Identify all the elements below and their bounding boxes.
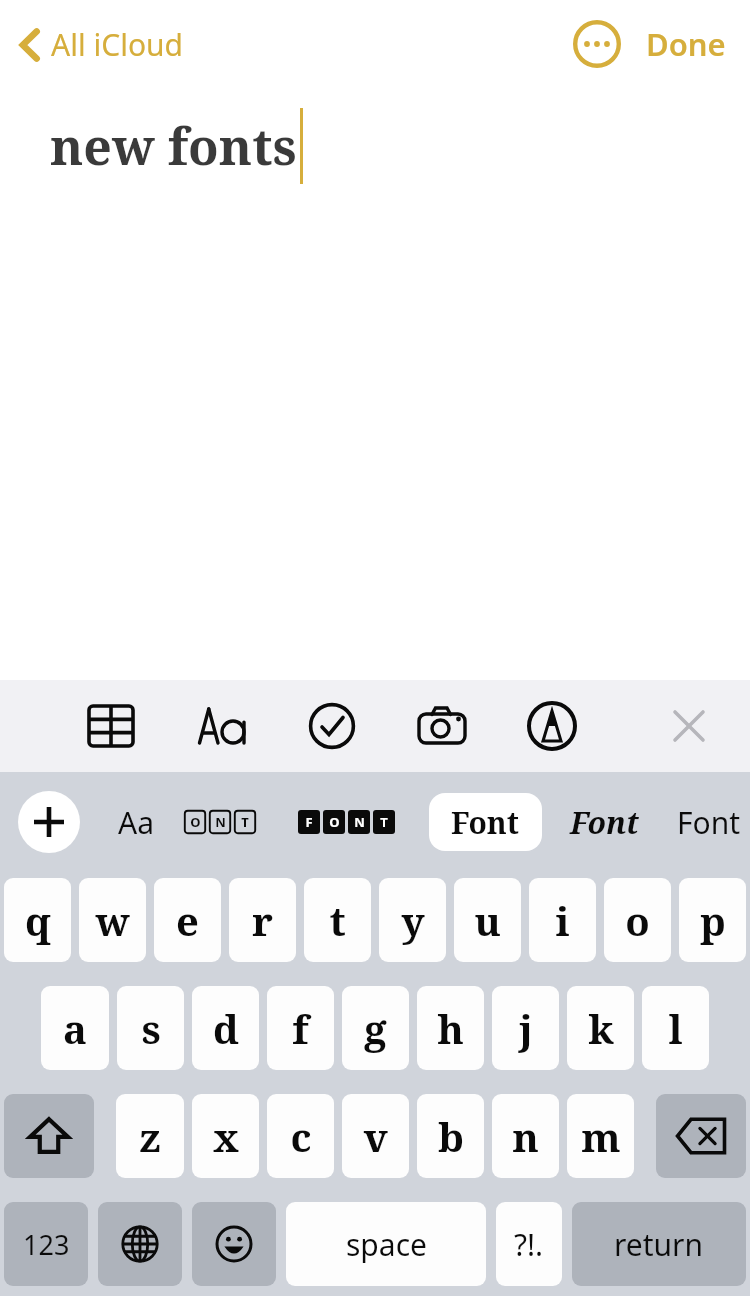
button[interactable]: y	[379, 878, 446, 962]
staticText: Font	[451, 802, 520, 843]
staticText: Font	[570, 802, 639, 843]
staticText: z	[139, 1109, 161, 1163]
button[interactable]: Close keyboard	[656, 693, 722, 759]
staticText: p	[700, 893, 726, 947]
button[interactable]: s	[117, 986, 184, 1070]
button[interactable]: Aa	[110, 796, 162, 849]
staticText: k	[588, 1001, 614, 1055]
staticText: 123	[23, 1226, 70, 1263]
staticText: new fonts	[50, 112, 297, 180]
button[interactable]: v	[342, 1094, 409, 1178]
staticText: d	[213, 1001, 239, 1055]
staticText: o	[625, 893, 650, 947]
staticText: x	[213, 1109, 239, 1163]
button[interactable]: k	[567, 986, 634, 1070]
staticText: N	[354, 813, 365, 831]
staticText: N	[215, 813, 226, 831]
staticText: m	[581, 1109, 621, 1163]
staticText: F	[305, 813, 313, 831]
button[interactable]: Font	[671, 796, 747, 849]
button[interactable]: j	[492, 986, 559, 1070]
staticText: ?!.	[514, 1224, 544, 1265]
button[interactable]: Text format	[189, 693, 255, 759]
button[interactable]: Backspace	[656, 1094, 746, 1178]
button[interactable]: x	[192, 1094, 259, 1178]
button[interactable]: Done	[640, 17, 732, 71]
staticText: O	[329, 813, 340, 831]
button[interactable]: Add	[18, 791, 80, 853]
button[interactable]: ?!.	[496, 1202, 562, 1286]
button[interactable]: Change keyboard language	[98, 1202, 182, 1286]
staticText: s	[141, 1001, 161, 1055]
button[interactable]: u	[454, 878, 521, 962]
staticText: e	[176, 893, 199, 947]
staticText: n	[512, 1109, 539, 1163]
button[interactable]: Emoji	[192, 1202, 276, 1286]
staticText: c	[290, 1109, 312, 1163]
button[interactable]: n	[492, 1094, 559, 1178]
button[interactable]: p	[679, 878, 746, 962]
button[interactable]: return	[572, 1202, 746, 1286]
button[interactable]: All iCloud	[14, 20, 188, 69]
staticText: v	[363, 1109, 388, 1163]
staticText: g	[364, 1001, 387, 1055]
button[interactable]: c	[267, 1094, 334, 1178]
button[interactable]: z	[116, 1094, 184, 1178]
button[interactable]: F	[294, 806, 399, 838]
staticText: Aa	[118, 802, 154, 843]
button[interactable]: w	[79, 878, 146, 962]
staticText: i	[555, 893, 570, 947]
button[interactable]: t	[304, 878, 371, 962]
button[interactable]: O	[180, 806, 260, 838]
button[interactable]: Font	[429, 793, 542, 851]
button[interactable]: d	[192, 986, 259, 1070]
staticText: u	[474, 893, 501, 947]
button[interactable]: g	[342, 986, 409, 1070]
staticText: All iCloud	[51, 24, 184, 65]
button[interactable]: e	[154, 878, 221, 962]
staticText: O	[190, 813, 201, 831]
button[interactable]: space	[286, 1202, 486, 1286]
staticText: Font	[677, 802, 741, 843]
button[interactable]: Markup	[519, 693, 585, 759]
staticText: f	[292, 1001, 309, 1055]
staticText: T	[380, 813, 388, 831]
staticText: l	[668, 1001, 683, 1055]
button[interactable]: r	[229, 878, 296, 962]
staticText: return	[614, 1224, 704, 1265]
button[interactable]: More options	[568, 15, 626, 73]
staticText: h	[437, 1001, 464, 1055]
button[interactable]: 123	[4, 1202, 88, 1286]
button[interactable]: h	[417, 986, 484, 1070]
staticText: t	[329, 893, 346, 947]
button[interactable]: o	[604, 878, 671, 962]
button[interactable]: Camera	[409, 693, 475, 759]
button[interactable]: f	[267, 986, 334, 1070]
button[interactable]: q	[4, 878, 71, 962]
staticText: q	[25, 893, 51, 947]
button[interactable]: l	[642, 986, 709, 1070]
staticText: y	[401, 893, 425, 947]
button[interactable]: a	[41, 986, 109, 1070]
staticText: T	[241, 813, 249, 831]
staticText: a	[63, 1001, 87, 1055]
button[interactable]: b	[417, 1094, 484, 1178]
staticText: b	[438, 1109, 464, 1163]
button[interactable]: Checklist	[299, 693, 365, 759]
button[interactable]: Shift	[4, 1094, 94, 1178]
staticText: j	[519, 1001, 533, 1055]
button[interactable]: Table	[78, 693, 144, 759]
staticText: w	[95, 893, 130, 947]
staticText: r	[252, 893, 273, 947]
button[interactable]: m	[567, 1094, 634, 1178]
staticText: space	[346, 1224, 427, 1265]
button[interactable]: i	[529, 878, 596, 962]
staticText: Done	[646, 23, 726, 65]
button[interactable]: Font	[564, 796, 645, 849]
